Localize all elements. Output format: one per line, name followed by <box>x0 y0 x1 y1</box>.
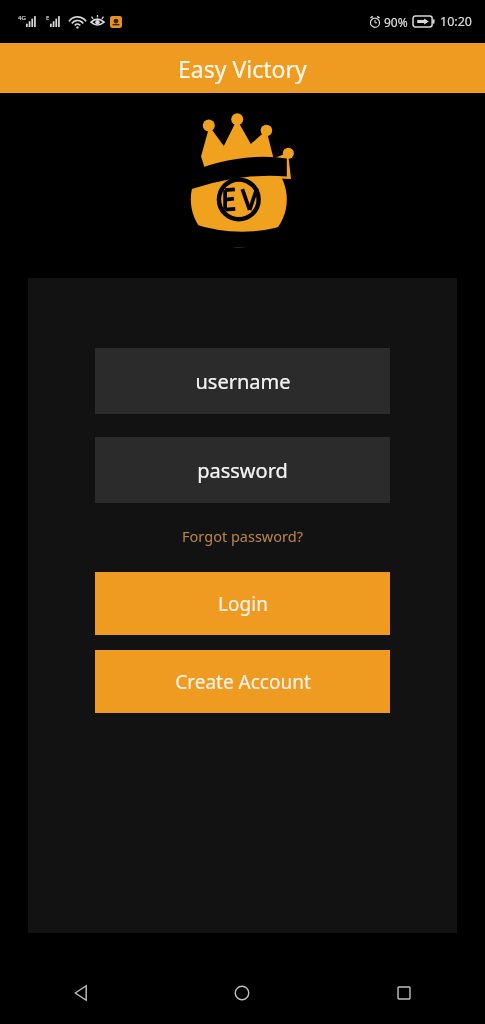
button[interactable]: username <box>95 348 390 414</box>
staticText: Login <box>218 591 268 617</box>
staticText: Easy Victory <box>178 53 307 84</box>
button[interactable]: Recent apps <box>323 962 485 1024</box>
button[interactable]: Back <box>0 962 161 1024</box>
button[interactable]: Home <box>161 962 323 1024</box>
staticText: 10:20 <box>440 13 472 30</box>
staticText: 90% <box>384 14 408 30</box>
staticText: 4G <box>18 14 26 22</box>
staticText: Create Account <box>175 669 311 695</box>
button[interactable]: Login <box>95 572 390 635</box>
button[interactable]: Forgot password? <box>95 526 390 546</box>
staticText: username <box>195 368 291 395</box>
button[interactable]: Create Account <box>95 650 390 713</box>
staticText: password <box>197 457 288 484</box>
staticText: Forgot password? <box>182 526 303 546</box>
button[interactable]: password <box>95 437 390 503</box>
staticText: E <box>46 14 50 22</box>
